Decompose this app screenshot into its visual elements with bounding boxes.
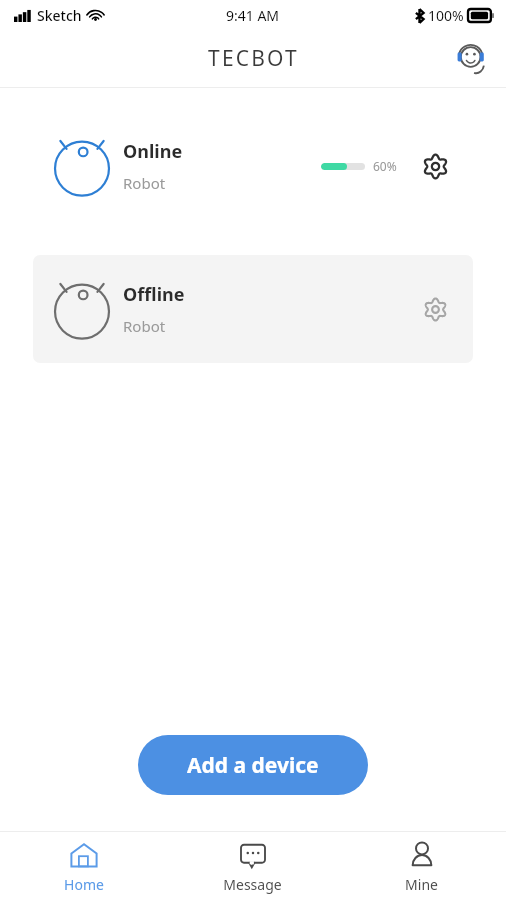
staticText: Add a device (187, 751, 319, 780)
staticText: Home (64, 875, 104, 894)
button[interactable]: Add a device (138, 735, 368, 795)
staticText: Offline (123, 282, 185, 307)
button[interactable]: Online (33, 112, 473, 220)
button[interactable]: Settings (415, 289, 455, 329)
button[interactable]: Mine (337, 832, 506, 900)
staticText: Robot (123, 173, 166, 193)
staticText: 100% (428, 6, 464, 25)
staticText: Robot (123, 316, 166, 336)
staticText: 60% (373, 158, 397, 174)
button[interactable]: Customer service (448, 37, 492, 81)
staticText: Mine (405, 875, 438, 894)
button[interactable]: Home (0, 832, 168, 900)
staticText: TECBOT (208, 44, 299, 73)
button[interactable]: Offline (33, 255, 473, 363)
staticText: Online (123, 139, 183, 164)
staticText: 9:41 AM (226, 6, 280, 25)
button[interactable]: Settings (415, 146, 455, 186)
staticText: Message (223, 875, 282, 894)
staticText: Sketch (37, 6, 82, 25)
button[interactable]: Message (168, 832, 337, 900)
